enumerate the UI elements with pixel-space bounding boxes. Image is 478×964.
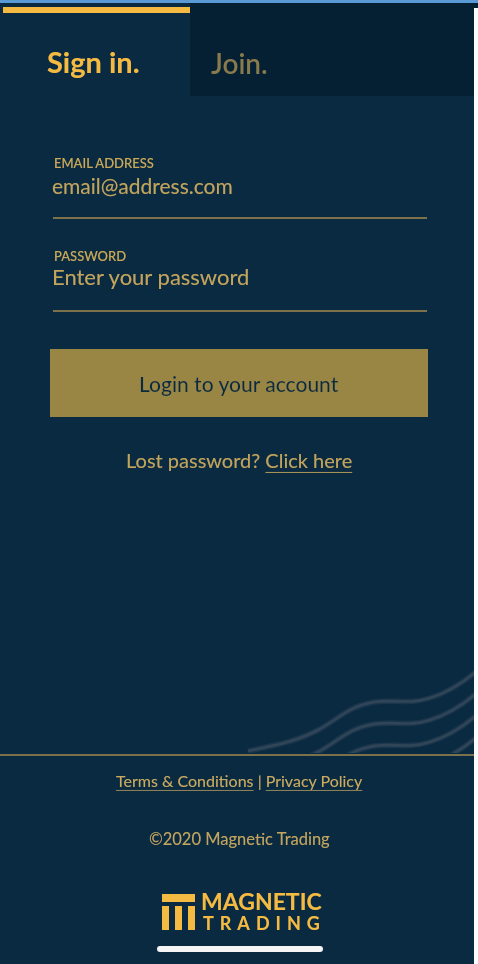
staticText: PASSWORD — [54, 248, 127, 264]
staticText: Sign in. — [47, 44, 140, 79]
staticText: TRADING — [203, 912, 326, 934]
staticText: EMAIL ADDRESS — [54, 155, 154, 171]
button[interactable] — [190, 0, 478, 96]
staticText: Lost password? Click here — [126, 448, 353, 472]
staticText: Enter your password — [52, 263, 250, 289]
button[interactable] — [0, 13, 190, 96]
staticText: Terms & Conditions | Privacy Policy — [116, 771, 363, 790]
staticText: email@address.com — [52, 173, 233, 198]
button[interactable]: Lost password? Click here — [0, 448, 478, 472]
staticText: Join. — [211, 46, 268, 80]
button[interactable]: Login to your account — [50, 349, 428, 417]
button[interactable]: Terms & Conditions | Privacy Policy — [0, 771, 478, 790]
staticText: ©2020 Magnetic Trading — [149, 829, 330, 849]
staticText: Login to your account — [139, 371, 339, 396]
staticText: MAGNETIC — [201, 887, 322, 915]
